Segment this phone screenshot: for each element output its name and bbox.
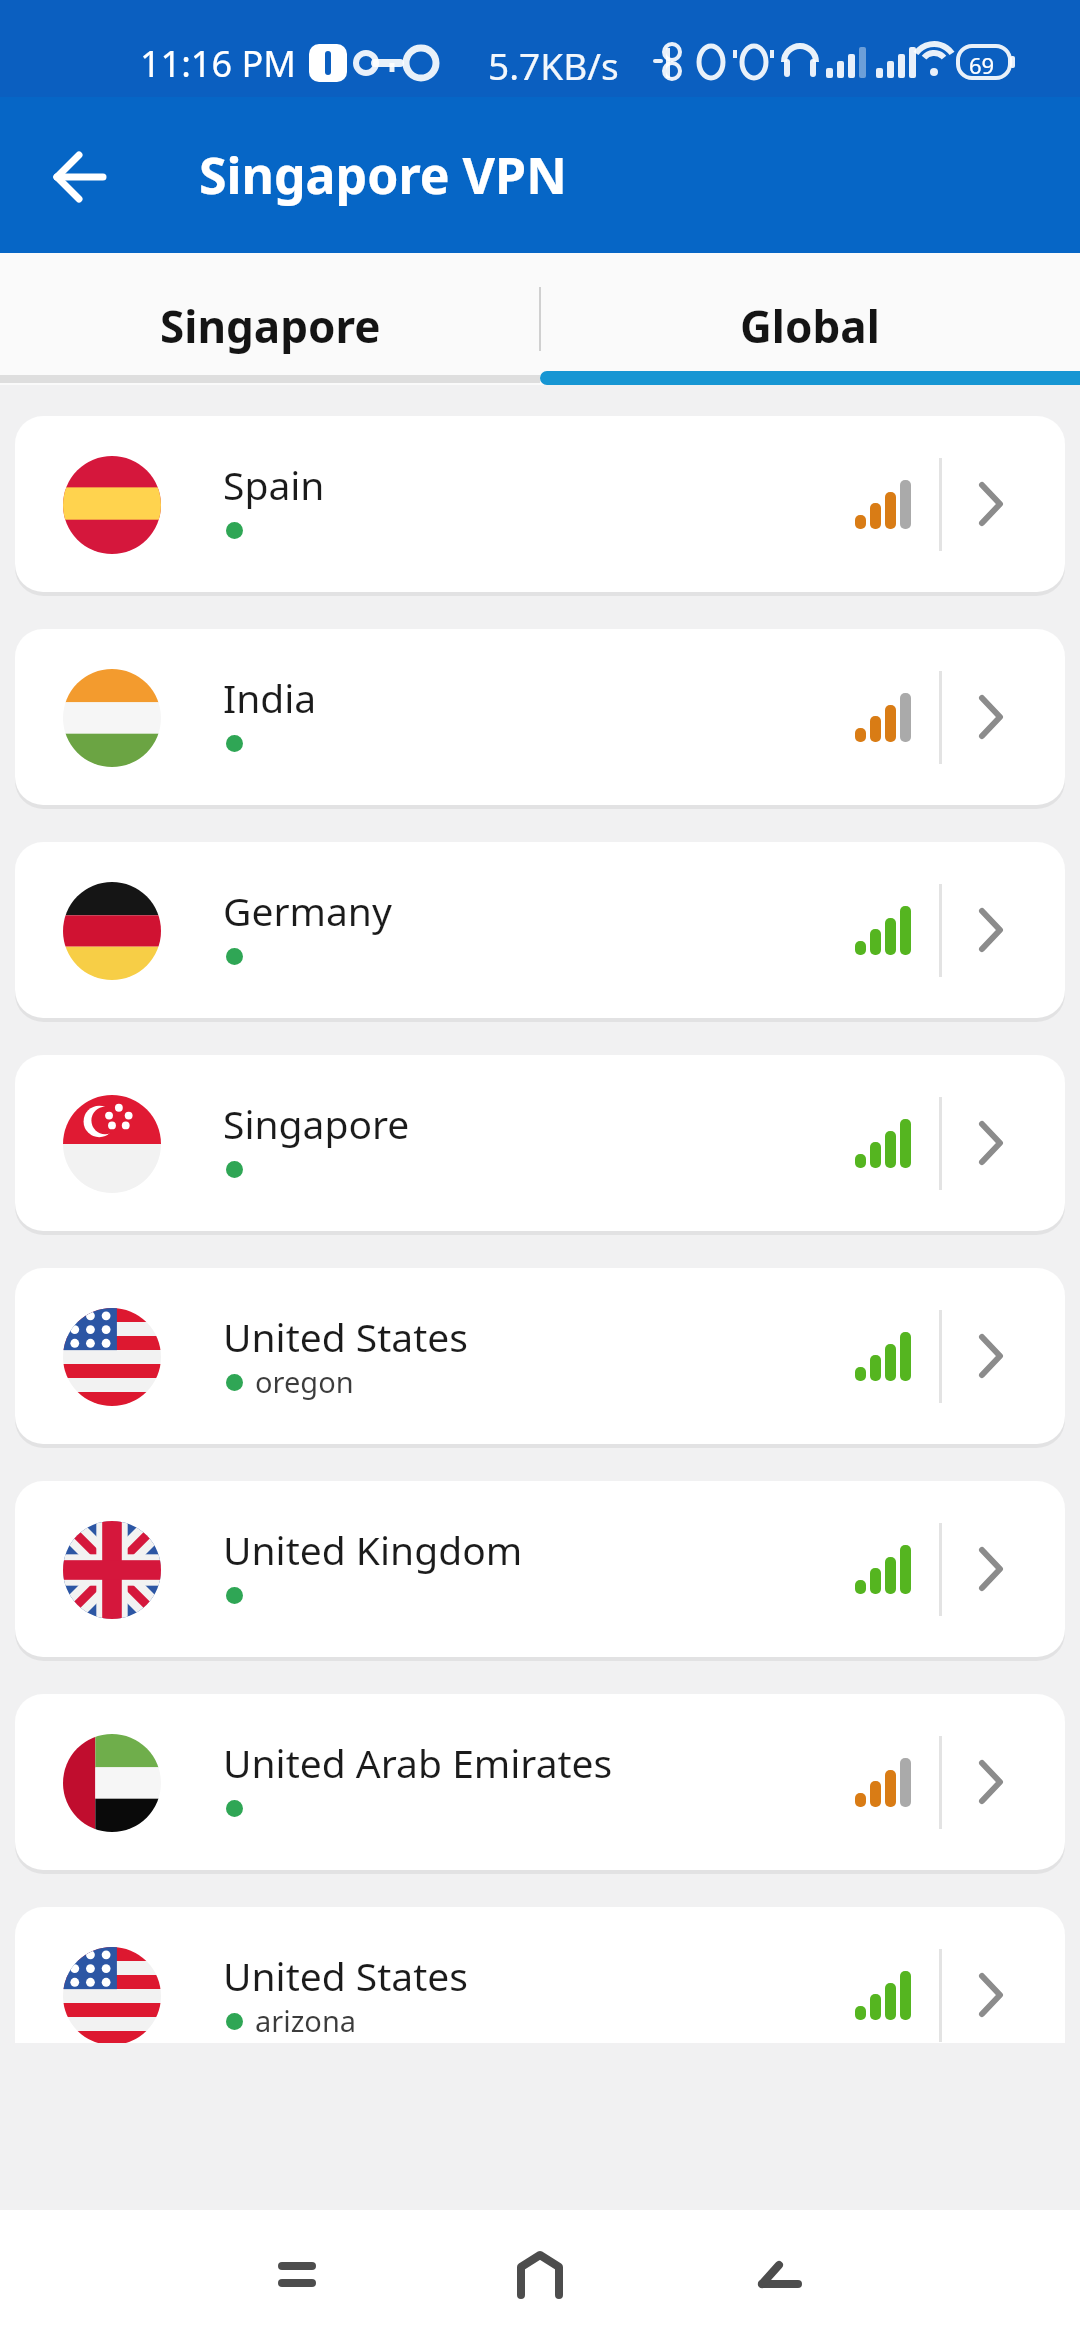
button[interactable]: United States xyxy=(15,1907,1065,2043)
button[interactable] xyxy=(500,2235,580,2315)
button[interactable]: United Kingdom xyxy=(15,1481,1065,1657)
staticText: Germany xyxy=(223,884,392,937)
staticText: Singapore xyxy=(160,296,381,356)
staticText: 11:16 PM xyxy=(140,39,296,88)
staticText: oregon xyxy=(255,1362,354,1401)
button[interactable] xyxy=(740,2235,820,2315)
staticText: United Arab Emirates xyxy=(223,1736,613,1789)
button[interactable]: United Arab Emirates xyxy=(15,1694,1065,1870)
staticText: United States xyxy=(223,1949,468,2002)
staticText: United States xyxy=(223,1310,468,1363)
staticText: India xyxy=(223,671,317,724)
staticText: Global xyxy=(740,296,880,356)
staticText: Spain xyxy=(223,458,325,511)
staticText: Singapore VPN xyxy=(199,141,567,209)
staticText: Singapore xyxy=(223,1097,410,1150)
staticText: 5.7KB/s xyxy=(488,40,619,90)
button[interactable] xyxy=(258,2235,338,2315)
button[interactable] xyxy=(40,139,120,219)
button[interactable]: Spain xyxy=(15,416,1065,592)
button[interactable]: Germany xyxy=(15,842,1065,1018)
staticText: United Kingdom xyxy=(223,1523,523,1576)
button[interactable]: Singapore xyxy=(15,1055,1065,1231)
button[interactable]: Singapore xyxy=(0,253,540,385)
staticText: 69 xyxy=(969,50,995,80)
button[interactable]: United States xyxy=(15,1268,1065,1444)
button[interactable]: Global xyxy=(540,253,1080,385)
button[interactable]: India xyxy=(15,629,1065,805)
staticText: arizona xyxy=(255,2001,357,2040)
